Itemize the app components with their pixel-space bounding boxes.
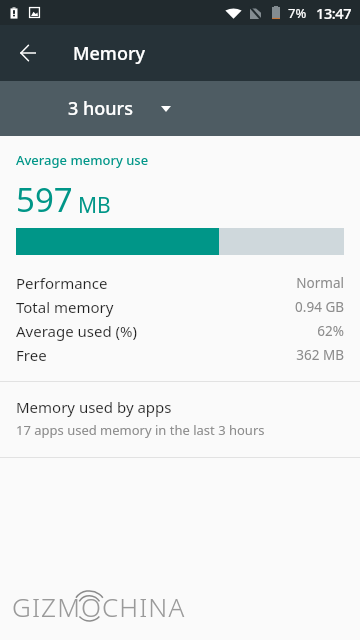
button[interactable]: 3 hours (54, 88, 187, 129)
staticText: Performance (16, 273, 108, 293)
staticText: 362 MB (296, 346, 344, 364)
staticText: Total memory (16, 297, 114, 317)
staticText: 7% (288, 4, 307, 22)
staticText: 597 (16, 177, 73, 222)
staticText: Average used (%) (16, 321, 138, 341)
button[interactable]: Memory used by apps (0, 382, 360, 457)
staticText: Free (16, 345, 47, 365)
staticText: 62% (317, 322, 344, 340)
staticText: Normal (296, 274, 344, 292)
staticText: MB (78, 191, 111, 220)
button[interactable]: Back (4, 29, 52, 77)
staticText: Memory (73, 41, 146, 66)
staticText: 3 hours (68, 96, 133, 121)
staticText: 0.94 GB (295, 298, 344, 316)
staticText: Memory used by apps (16, 397, 172, 417)
staticText: Average memory use (16, 151, 149, 169)
staticText: 17 apps used memory in the last 3 hours (16, 421, 265, 439)
staticText: 13:47 (316, 3, 352, 23)
staticText: GIZMOCHINA (12, 589, 186, 624)
